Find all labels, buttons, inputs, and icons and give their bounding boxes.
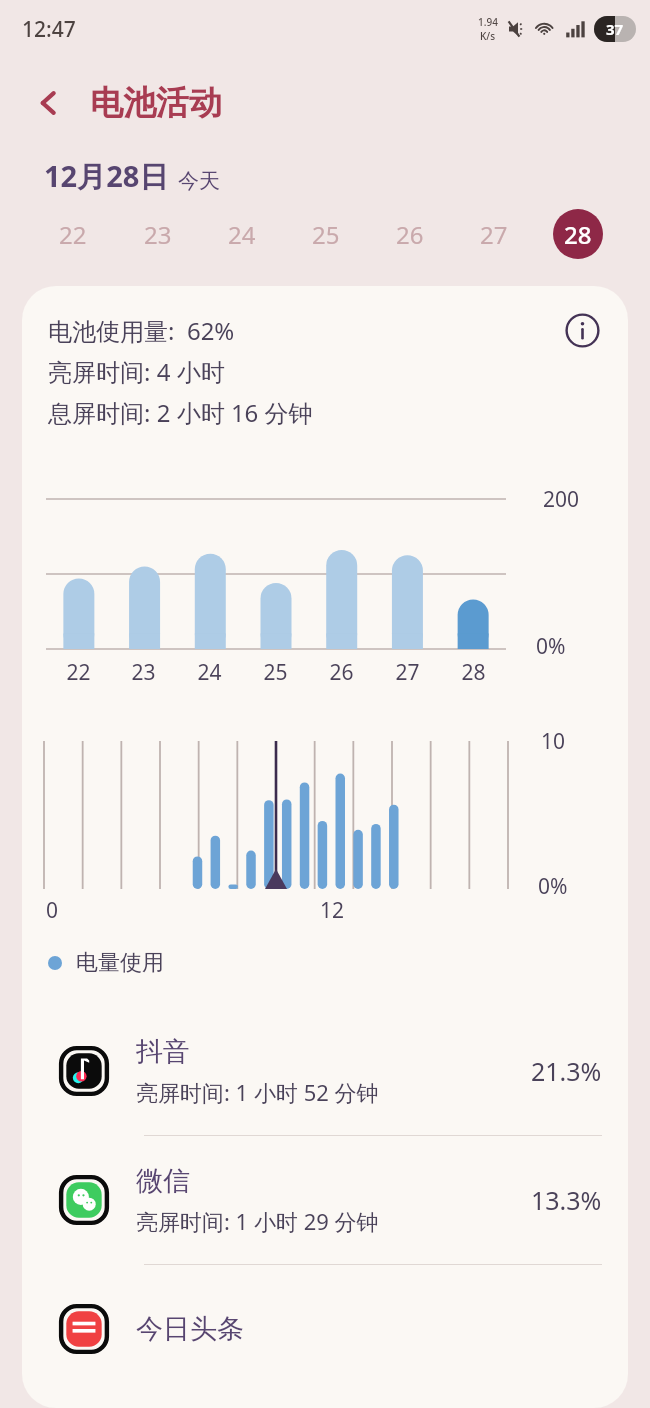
staticText: 27 [480, 218, 508, 251]
staticText: 0 [46, 896, 59, 925]
staticText: 0% [538, 872, 568, 901]
button[interactable]: 23 [115, 196, 200, 272]
button[interactable]: 抖音 [22, 1007, 628, 1135]
button[interactable]: 28 [536, 196, 620, 272]
staticText: 25 [312, 218, 340, 251]
staticText: 今天 [178, 168, 220, 194]
staticText: 28 [461, 658, 486, 687]
staticText: 23 [144, 218, 172, 251]
button[interactable]: 25 [284, 196, 368, 272]
staticText: 24 [197, 658, 222, 687]
staticText: K/s [480, 29, 496, 43]
staticText: 亮屏时间: 4 小时 [48, 355, 225, 388]
staticText: 22 [59, 218, 87, 251]
staticText: 22 [66, 658, 91, 687]
staticText: 200 [543, 485, 580, 514]
staticText: 24 [228, 218, 256, 251]
button[interactable]: 27 [452, 196, 536, 272]
staticText: 37 [606, 19, 624, 39]
staticText: 13.3% [531, 1183, 602, 1217]
button[interactable]: Back [20, 74, 78, 132]
staticText: 今日头条 [136, 1312, 244, 1346]
staticText: 亮屏时间: 1 小时 52 分钟 [136, 1077, 379, 1107]
staticText: 27 [395, 658, 420, 687]
staticText: 21.3% [531, 1054, 602, 1088]
button[interactable]: 微信 [22, 1136, 628, 1264]
staticText: 12 [320, 896, 345, 925]
staticText: 电量使用 [76, 949, 164, 977]
staticText: 12:47 [22, 15, 76, 44]
staticText: 23 [131, 658, 156, 687]
staticText: 0% [536, 632, 566, 661]
staticText: 10 [541, 727, 566, 756]
staticText: 12月28日 [44, 156, 169, 196]
staticText: 26 [329, 658, 354, 687]
staticText: 电池使用量: 62% [48, 314, 235, 347]
staticText: 28 [564, 218, 592, 251]
button[interactable]: 今日头条 [22, 1265, 628, 1393]
staticText: 电池活动 [90, 82, 222, 124]
staticText: 抖音 [136, 1035, 190, 1069]
staticText: 25 [263, 658, 288, 687]
button[interactable]: 22 [30, 196, 115, 272]
button[interactable]: 26 [368, 196, 452, 272]
button[interactable]: Info [558, 306, 606, 354]
button[interactable]: 24 [200, 196, 284, 272]
staticText: 26 [396, 218, 424, 251]
staticText: 息屏时间: 2 小时 16 分钟 [48, 396, 313, 429]
staticText: 亮屏时间: 1 小时 29 分钟 [136, 1206, 379, 1236]
staticText: 1.94 [478, 15, 498, 29]
staticText: 微信 [136, 1164, 190, 1198]
